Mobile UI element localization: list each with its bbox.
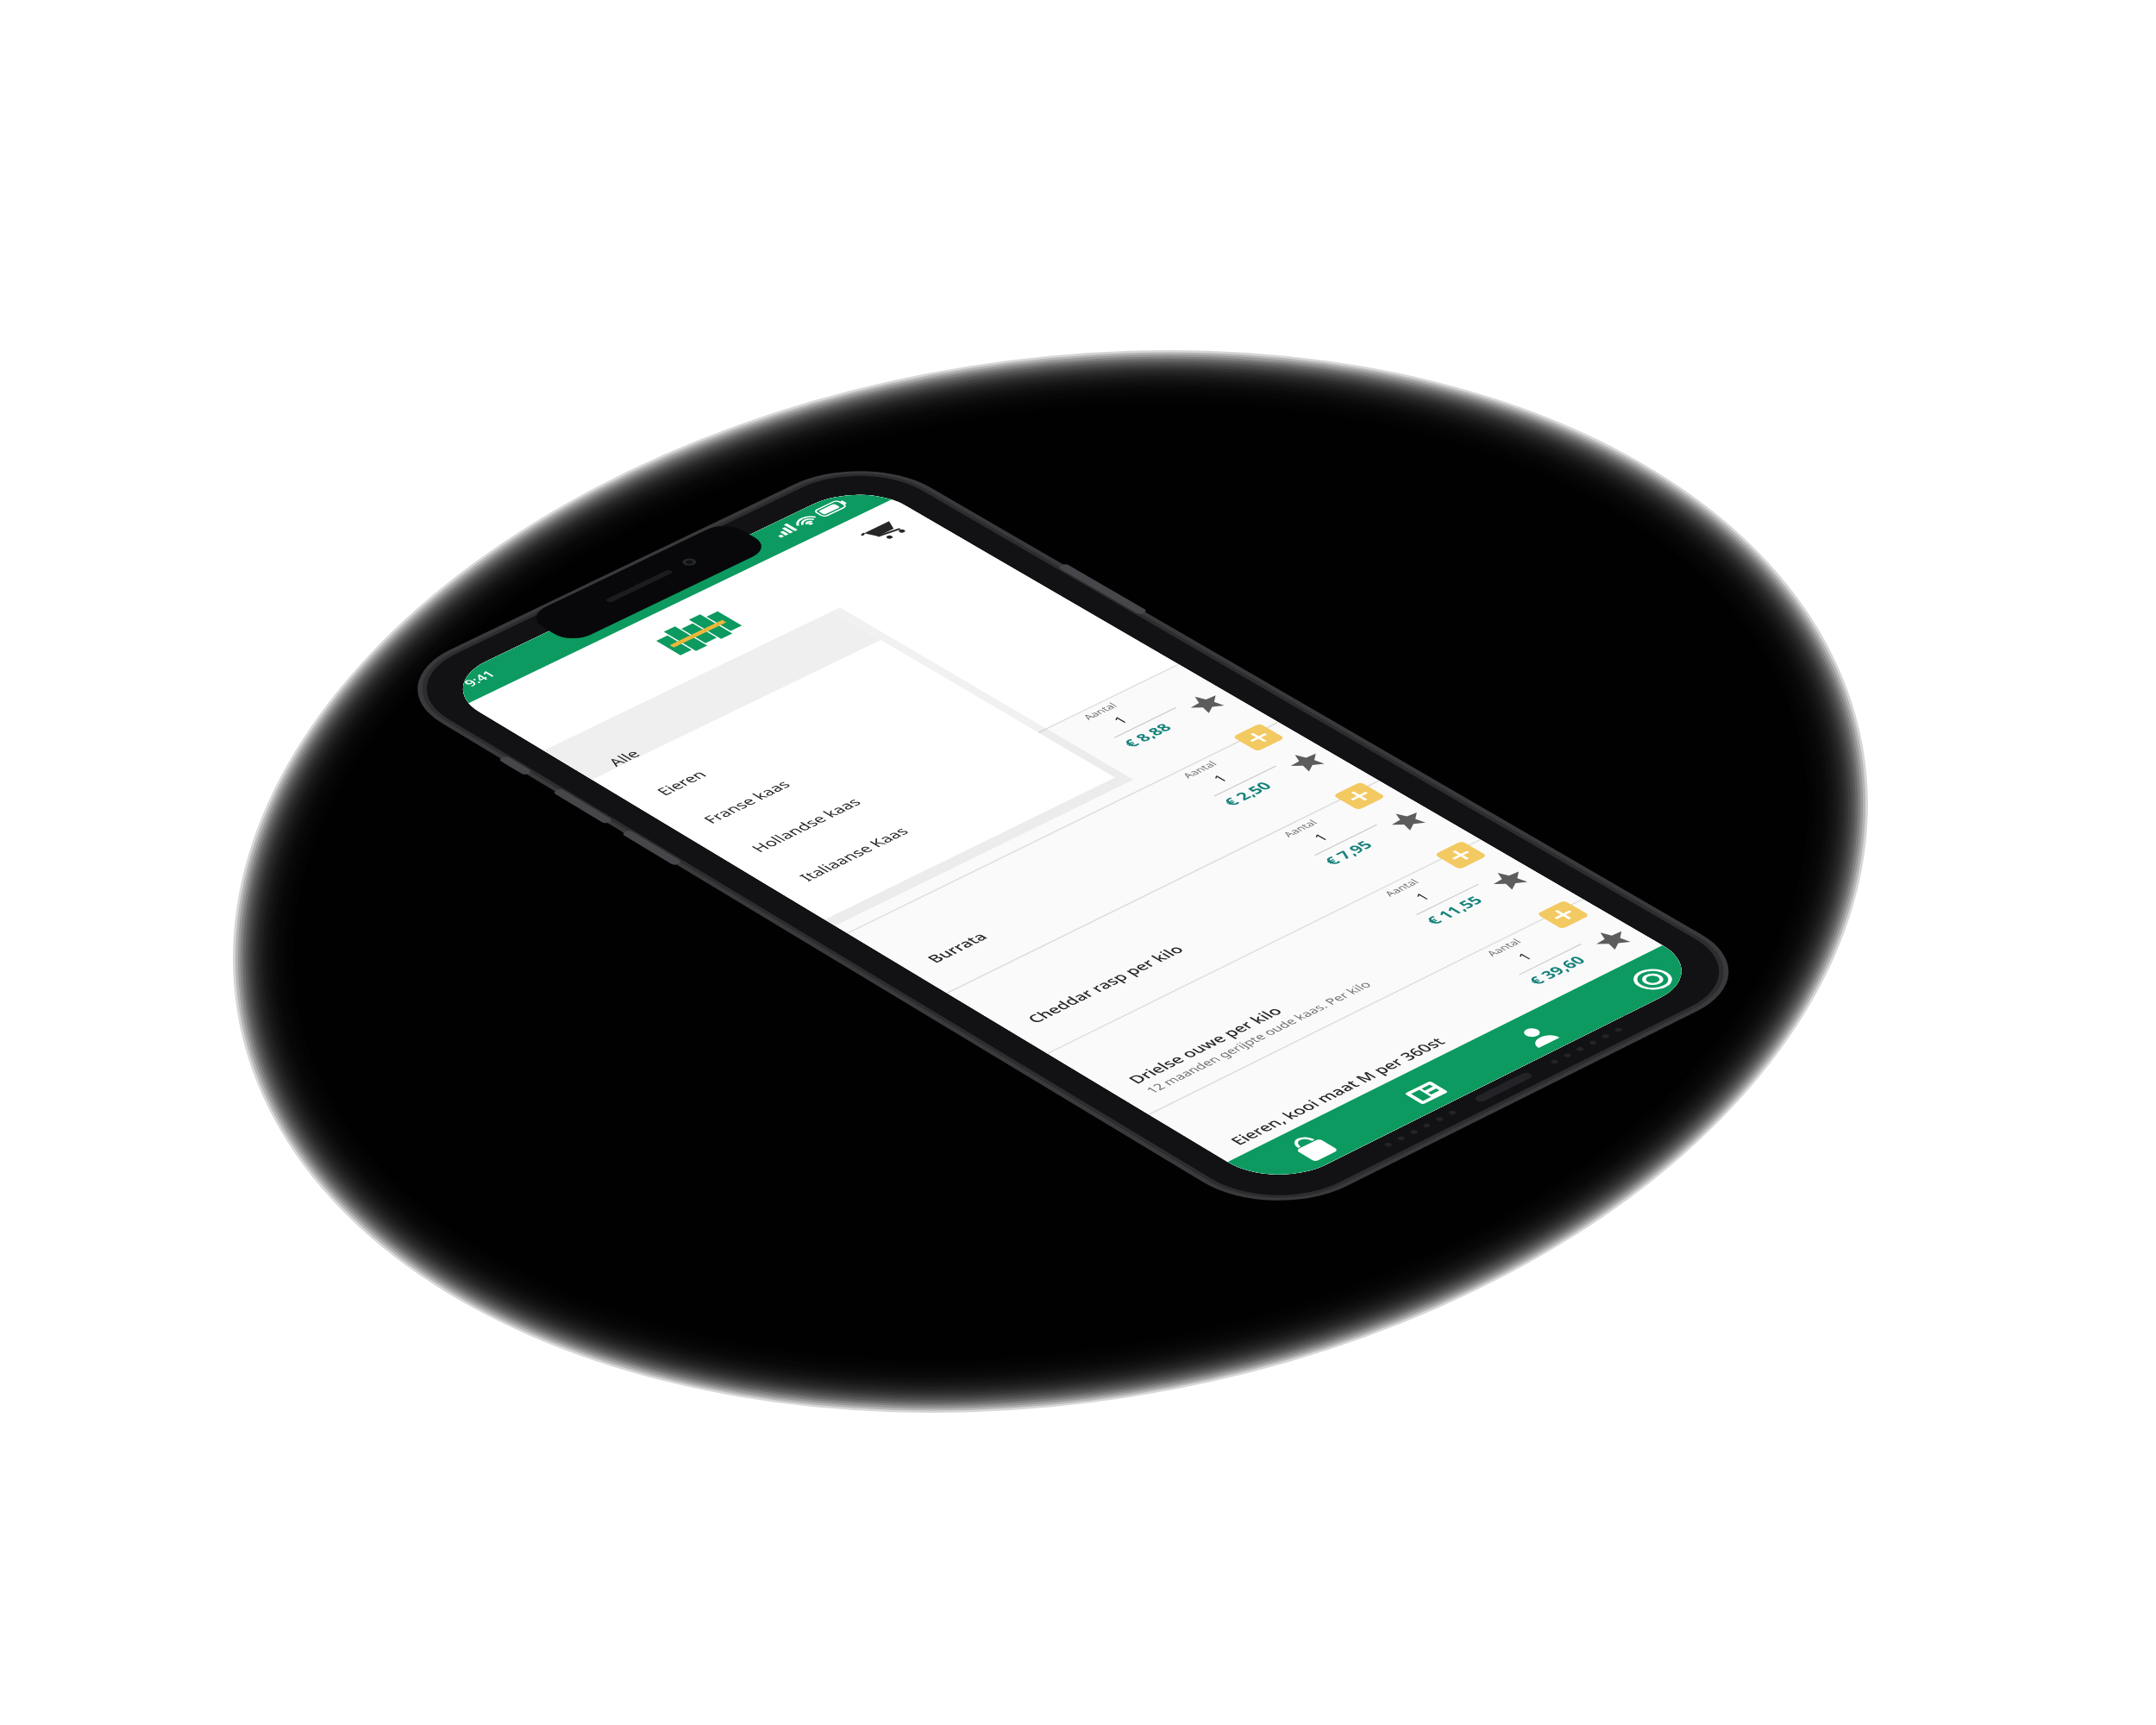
button[interactable]: Add to cart — [1321, 773, 1404, 817]
button[interactable]: Categorie: Alle — [539, 609, 874, 776]
button[interactable]: Offers — [1214, 1099, 1384, 1189]
button[interactable] — [847, 747, 1327, 993]
button[interactable]: Stores — [1542, 938, 1709, 1026]
button[interactable]: Folder — [1324, 1044, 1493, 1135]
button[interactable] — [575, 630, 906, 795]
button[interactable]: Favourite — [1368, 800, 1448, 843]
button[interactable]: Add to cart — [1423, 831, 1506, 875]
button[interactable]: Favourite — [1572, 919, 1653, 963]
button[interactable]: Favourite — [1267, 741, 1347, 783]
button[interactable]: Favourite — [1470, 859, 1551, 902]
button[interactable]: Add to cart — [1121, 656, 1203, 699]
button[interactable] — [1149, 925, 1634, 1176]
button[interactable]: Shopping cart — [836, 501, 946, 560]
button[interactable]: Add to cart — [1525, 891, 1608, 936]
button[interactable] — [749, 689, 1227, 933]
button[interactable] — [765, 742, 1099, 909]
button[interactable]: Add to cart — [1221, 714, 1303, 758]
button[interactable]: Account — [1433, 991, 1602, 1081]
button[interactable] — [622, 657, 954, 823]
button[interactable] — [668, 685, 1000, 851]
button[interactable] — [717, 713, 1050, 880]
button[interactable]: Favourite — [1167, 683, 1246, 725]
button[interactable] — [947, 806, 1429, 1053]
button[interactable] — [1047, 864, 1531, 1113]
